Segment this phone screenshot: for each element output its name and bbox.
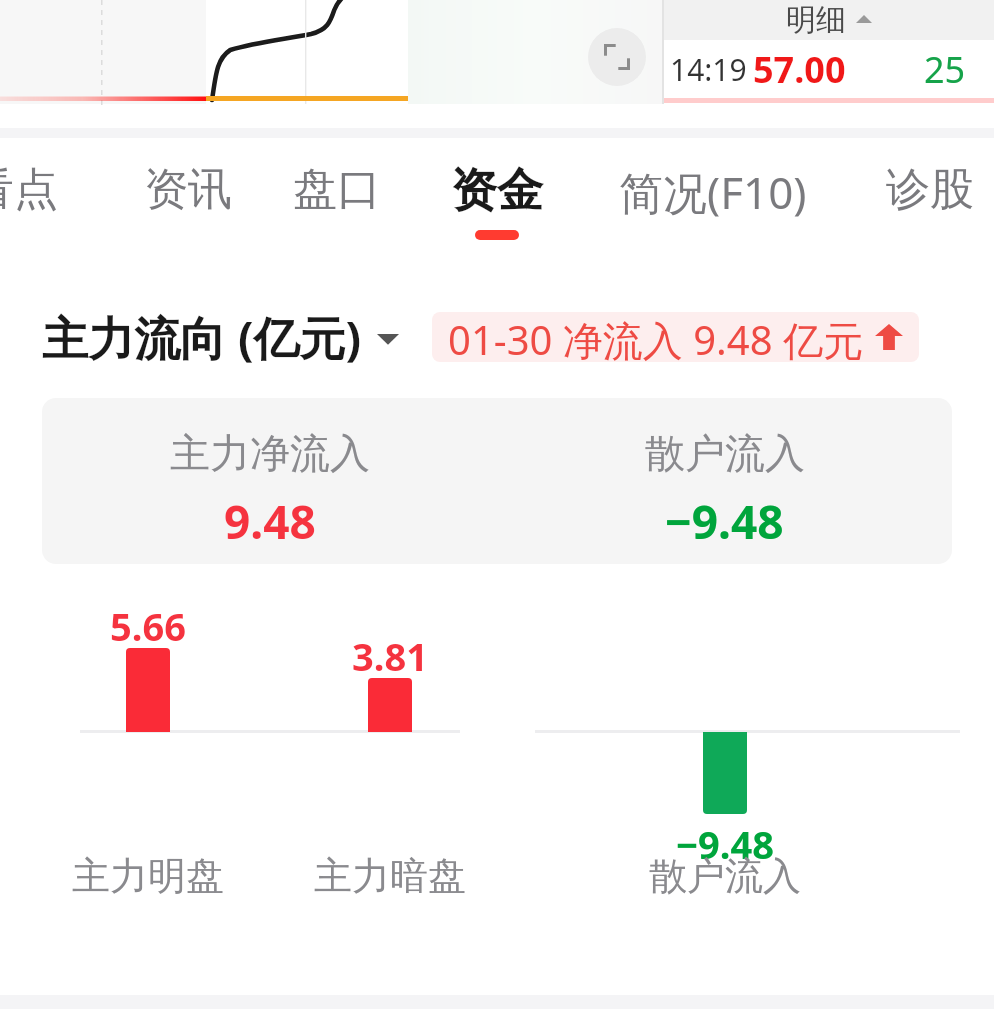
staticText: 诊股	[886, 162, 974, 217]
staticText: 看点	[0, 162, 58, 217]
button[interactable]: Fullscreen	[588, 28, 646, 86]
staticText: 主力明盘	[72, 852, 224, 900]
staticText: 57.00	[753, 45, 846, 94]
button[interactable]: 盘口	[262, 138, 412, 260]
staticText: 资讯	[144, 162, 232, 217]
button[interactable]: 诊股	[855, 138, 994, 260]
staticText: 简况(F10)	[619, 162, 807, 222]
staticText: 盘口	[293, 162, 381, 217]
staticText: 明细	[786, 1, 846, 39]
staticText: 01-30 净流入 9.48 亿元	[448, 312, 863, 362]
button[interactable]: 01-30 净流入 9.48 亿元	[432, 312, 919, 362]
staticText: 主力暗盘	[314, 852, 466, 900]
staticText: 散户流入	[649, 852, 801, 900]
button[interactable]: 简况(F10)	[578, 138, 848, 260]
button[interactable]: 资金	[422, 138, 572, 260]
button[interactable]: 看点	[0, 138, 89, 260]
staticText: 9.48	[224, 490, 316, 553]
staticText: 14:19	[670, 49, 747, 90]
staticText: 5.66	[110, 600, 186, 652]
staticText: 主力净流入	[170, 428, 370, 478]
staticText: −9.48	[676, 818, 774, 870]
staticText: 主力流向 (亿元)	[42, 306, 362, 369]
staticText: 散户流入	[645, 428, 805, 478]
staticText: 25	[924, 45, 966, 94]
button[interactable]: 主力净流入	[42, 398, 952, 564]
staticText: 3.81	[352, 630, 428, 682]
button[interactable]: 资讯	[113, 138, 263, 260]
staticText: 资金	[451, 162, 543, 220]
button[interactable]: 主力流向 (亿元)	[42, 306, 400, 369]
staticText: −9.48	[665, 490, 784, 553]
button[interactable]: 5.66	[0, 590, 994, 930]
